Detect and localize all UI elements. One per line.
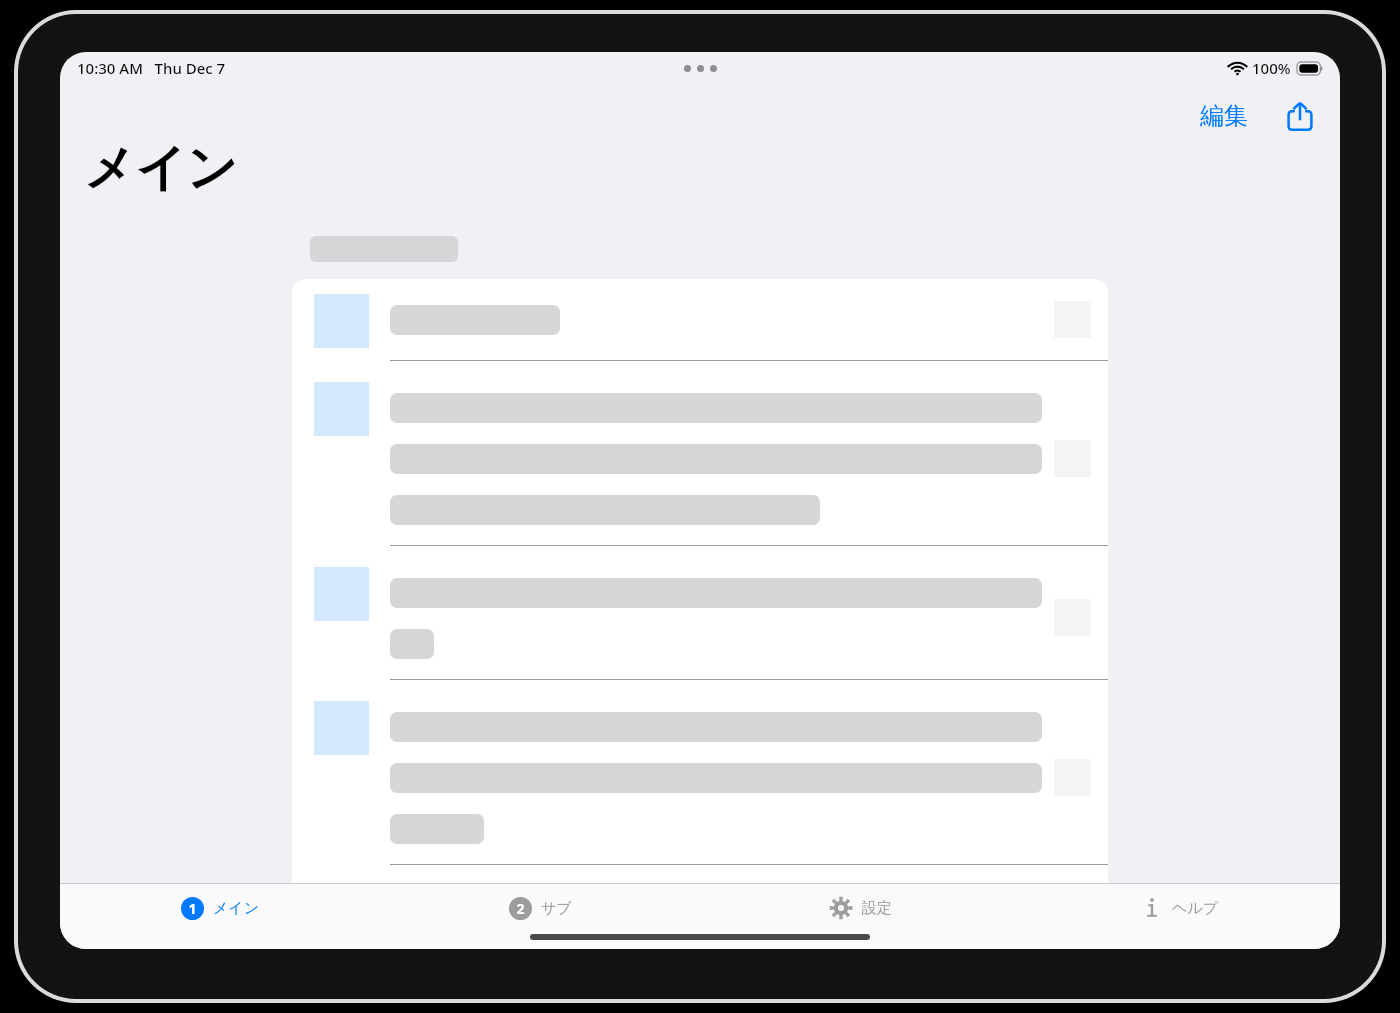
button[interactable]: 1 [60, 884, 380, 932]
staticText: 10:30 AM Thu Dec 7 [77, 58, 226, 78]
staticText: 編集 [1200, 101, 1248, 131]
staticText: 設定 [862, 899, 892, 918]
staticText: ヘルプ [1172, 899, 1219, 918]
staticText: サブ [541, 899, 572, 918]
staticText: 2 [516, 899, 525, 918]
button[interactable]: ヘルプ [1020, 884, 1340, 932]
button[interactable]: Share [1278, 94, 1322, 138]
button[interactable]: 編集 [1192, 95, 1256, 137]
staticText: メイン [84, 137, 238, 200]
staticText: メイン [213, 899, 260, 918]
button[interactable]: 設定 [700, 884, 1020, 932]
staticText: 1 [188, 899, 197, 918]
button[interactable]: 2 [380, 884, 700, 932]
staticText: 100% [1252, 58, 1291, 78]
